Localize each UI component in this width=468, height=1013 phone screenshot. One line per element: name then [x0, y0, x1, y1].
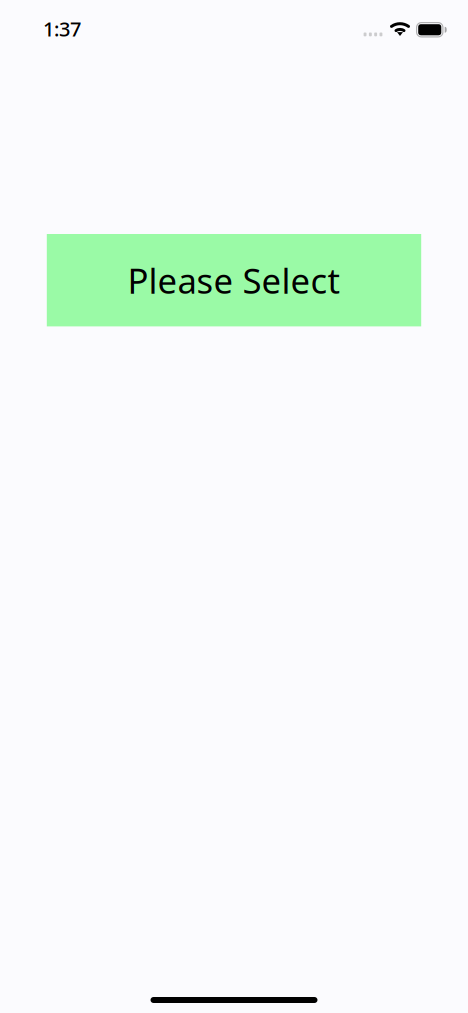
staticText: Please Select [127, 257, 340, 303]
staticText: 1:37 [43, 15, 81, 42]
button[interactable]: Please Select [47, 234, 421, 326]
